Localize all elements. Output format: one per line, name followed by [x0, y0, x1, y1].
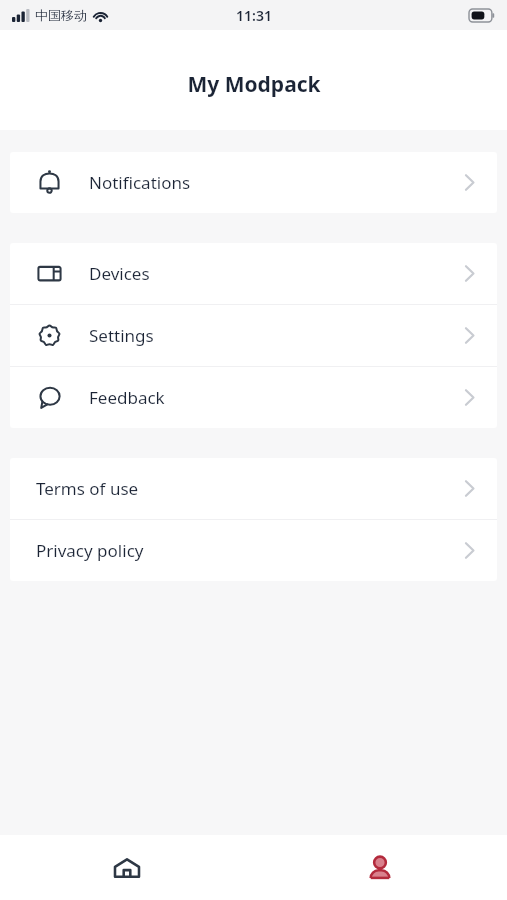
button[interactable]: Notifications — [10, 152, 497, 213]
staticText: My Modpack — [187, 70, 321, 99]
button[interactable]: Home — [0, 835, 253, 900]
staticText: Settings — [89, 324, 154, 347]
staticText: Devices — [89, 262, 150, 285]
button[interactable]: Terms of use — [10, 458, 497, 519]
staticText: Notifications — [89, 171, 191, 194]
button[interactable]: Devices — [10, 243, 497, 304]
staticText: Feedback — [89, 386, 165, 409]
button[interactable]: Feedback — [10, 367, 497, 428]
staticText: Terms of use — [36, 477, 139, 500]
button[interactable]: Settings — [10, 305, 497, 366]
button[interactable]: Privacy policy — [10, 520, 497, 581]
staticText: 中国移动 — [35, 7, 87, 23]
staticText: 11:31 — [236, 6, 272, 25]
staticText: Privacy policy — [36, 539, 144, 562]
button[interactable]: Profile — [253, 835, 507, 900]
